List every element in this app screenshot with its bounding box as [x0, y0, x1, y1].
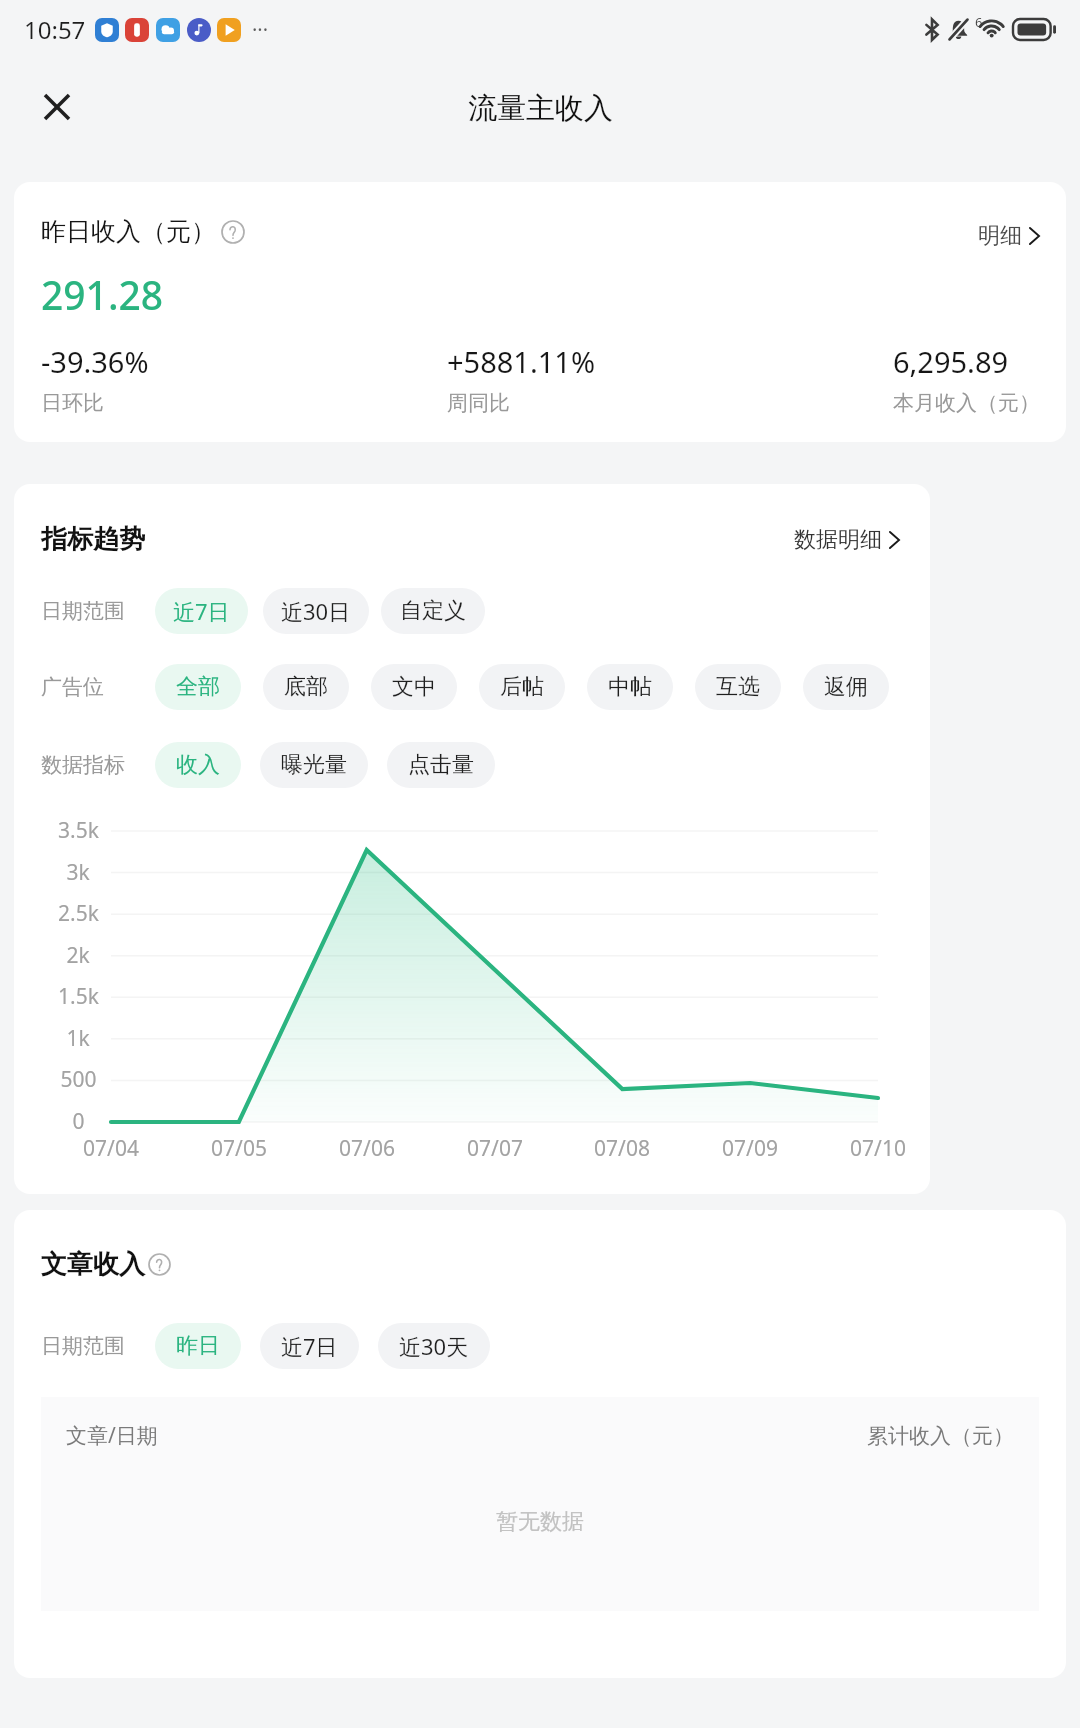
staticText: 3.5k	[58, 816, 99, 845]
staticText: 日期范围	[41, 1333, 125, 1359]
staticText: 文章收入	[41, 1248, 145, 1281]
staticText: 1k	[66, 1024, 90, 1053]
staticText: 收入	[176, 751, 220, 779]
button[interactable]: 全部	[155, 664, 241, 710]
staticText: 07/08	[594, 1134, 650, 1163]
button[interactable]: 收入	[155, 742, 241, 788]
staticText: 0	[72, 1107, 85, 1136]
staticText: 文章/日期	[66, 1421, 158, 1450]
staticText: 累计收入（元）	[867, 1423, 1014, 1449]
staticText: 广告位	[41, 674, 104, 700]
staticText: 日期范围	[41, 598, 125, 624]
staticText: 数据明细	[794, 526, 882, 554]
staticText: 07/04	[83, 1134, 139, 1163]
staticText: 互选	[716, 673, 760, 701]
staticText: 07/06	[339, 1134, 395, 1163]
button[interactable]: 近30天	[378, 1323, 490, 1369]
staticText: 指标趋势	[41, 523, 145, 556]
button[interactable]: 后帖	[479, 664, 565, 710]
button[interactable]: 明细	[978, 222, 1040, 250]
staticText: 291.28	[41, 268, 164, 321]
staticText: 07/05	[211, 1134, 267, 1163]
staticText: 07/09	[722, 1134, 778, 1163]
button[interactable]: 中帖	[587, 664, 673, 710]
button[interactable]: 互选	[695, 664, 781, 710]
staticText: 近7日	[281, 1331, 338, 1361]
staticText: 昨日收入（元）	[41, 216, 216, 247]
staticText: 近30日	[281, 596, 351, 626]
staticText: 6	[975, 13, 983, 31]
staticText: 日环比	[41, 390, 104, 416]
staticText: 2k	[66, 941, 90, 970]
staticText: 点击量	[408, 751, 474, 779]
staticText: 数据指标	[41, 752, 125, 778]
staticText: 07/10	[850, 1134, 906, 1163]
staticText: 后帖	[500, 673, 544, 701]
button[interactable]: 点击量	[387, 742, 495, 788]
staticText: 1.5k	[58, 982, 99, 1011]
button[interactable]: 底部	[263, 664, 349, 710]
button[interactable]: 自定义	[381, 588, 485, 634]
button[interactable]: 近7日	[260, 1323, 359, 1369]
button[interactable]: 曝光量	[260, 742, 368, 788]
staticText: 文中	[392, 673, 436, 701]
staticText: 明细	[978, 222, 1022, 250]
staticText: 3k	[66, 858, 90, 887]
staticText: 自定义	[400, 597, 466, 625]
staticText: 近30天	[399, 1331, 469, 1361]
staticText: -39.36%	[41, 342, 149, 381]
button[interactable]: 近7日	[155, 588, 248, 634]
button[interactable]: Close	[28, 78, 86, 136]
staticText: 底部	[284, 673, 328, 701]
button[interactable]: 近30日	[263, 588, 369, 634]
button[interactable]: 文中	[371, 664, 457, 710]
staticText: 10:57	[24, 13, 86, 46]
staticText: 中帖	[608, 673, 652, 701]
button[interactable]: 昨日	[155, 1323, 241, 1369]
staticText: 2.5k	[58, 899, 99, 928]
staticText: 本月收入（元）	[893, 390, 1040, 416]
staticText: 近7日	[173, 596, 230, 626]
staticText: 曝光量	[281, 751, 347, 779]
staticText: 流量主收入	[468, 90, 613, 127]
staticText: 周同比	[447, 390, 510, 416]
staticText: 暂无数据	[496, 1508, 584, 1536]
staticText: 昨日	[176, 1332, 220, 1360]
staticText: 全部	[176, 673, 220, 701]
button[interactable]: 数据明细	[794, 526, 900, 554]
staticText: 07/07	[467, 1134, 523, 1163]
staticText: ···	[252, 16, 269, 43]
button[interactable]: 返佣	[803, 664, 889, 710]
staticText: +5881.11%	[447, 342, 595, 381]
staticText: 返佣	[824, 673, 868, 701]
staticText: 500	[60, 1065, 97, 1094]
staticText: 6,295.89	[893, 342, 1009, 381]
